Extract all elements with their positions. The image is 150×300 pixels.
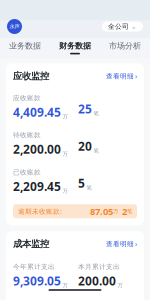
staticText: 应收监控 [13, 70, 49, 82]
staticText: 成本监控 [13, 238, 49, 250]
button[interactable]: 个人中心 [7, 19, 22, 34]
staticText: 全公司 [108, 22, 129, 31]
staticText: 万 [62, 282, 67, 289]
staticText: 本月累计支出 [78, 263, 120, 271]
staticText: 25 [78, 101, 92, 117]
staticText: 4,409.45 [13, 104, 61, 120]
button[interactable]: 业务数据 [0, 41, 50, 54]
staticText: 查看明细 [106, 72, 134, 80]
button[interactable]: 财务数据 [50, 41, 100, 54]
staticText: 9,309.05 [13, 273, 61, 289]
staticText: 2,200.00 [13, 141, 61, 157]
staticText: 笔 [86, 184, 91, 191]
staticText: 逾期未收账款: [18, 207, 62, 216]
staticText: 市场分析 [109, 41, 141, 51]
staticText: 永声 [9, 23, 19, 30]
button[interactable]: 全公司 [102, 21, 143, 31]
staticText: 查看明细 [106, 240, 134, 248]
staticText: 万 [62, 188, 67, 194]
staticText: 万 [62, 113, 67, 120]
staticText: 待收账款 [13, 131, 41, 139]
staticText: 应收账款 [13, 94, 41, 102]
staticText: 财务数据 [59, 41, 91, 51]
staticText: 万 [113, 208, 118, 215]
staticText: 业务数据 [9, 41, 41, 51]
staticText: 5 [78, 175, 85, 191]
button[interactable]: 查看明细 [106, 240, 137, 248]
button[interactable]: 市场分析 [100, 41, 150, 54]
staticText: 笔 [93, 110, 98, 117]
staticText: 87.05 [90, 205, 113, 217]
staticText: 已收账款 [13, 168, 41, 176]
staticText: 2 [118, 205, 127, 217]
staticText: 20 [78, 138, 92, 154]
staticText: › [135, 240, 137, 248]
staticText: ⌄ [131, 23, 137, 30]
staticText: 200.00 [78, 273, 116, 289]
button[interactable]: 查看明细 [106, 72, 137, 81]
staticText: 万 [62, 151, 67, 157]
staticText: › [135, 72, 137, 81]
staticText: 今年累计支出 [13, 263, 55, 271]
staticText: 笔 [93, 147, 98, 154]
staticText: 笔 [127, 208, 132, 215]
staticText: 2,209.45 [13, 178, 61, 194]
staticText: 万 [117, 282, 122, 289]
